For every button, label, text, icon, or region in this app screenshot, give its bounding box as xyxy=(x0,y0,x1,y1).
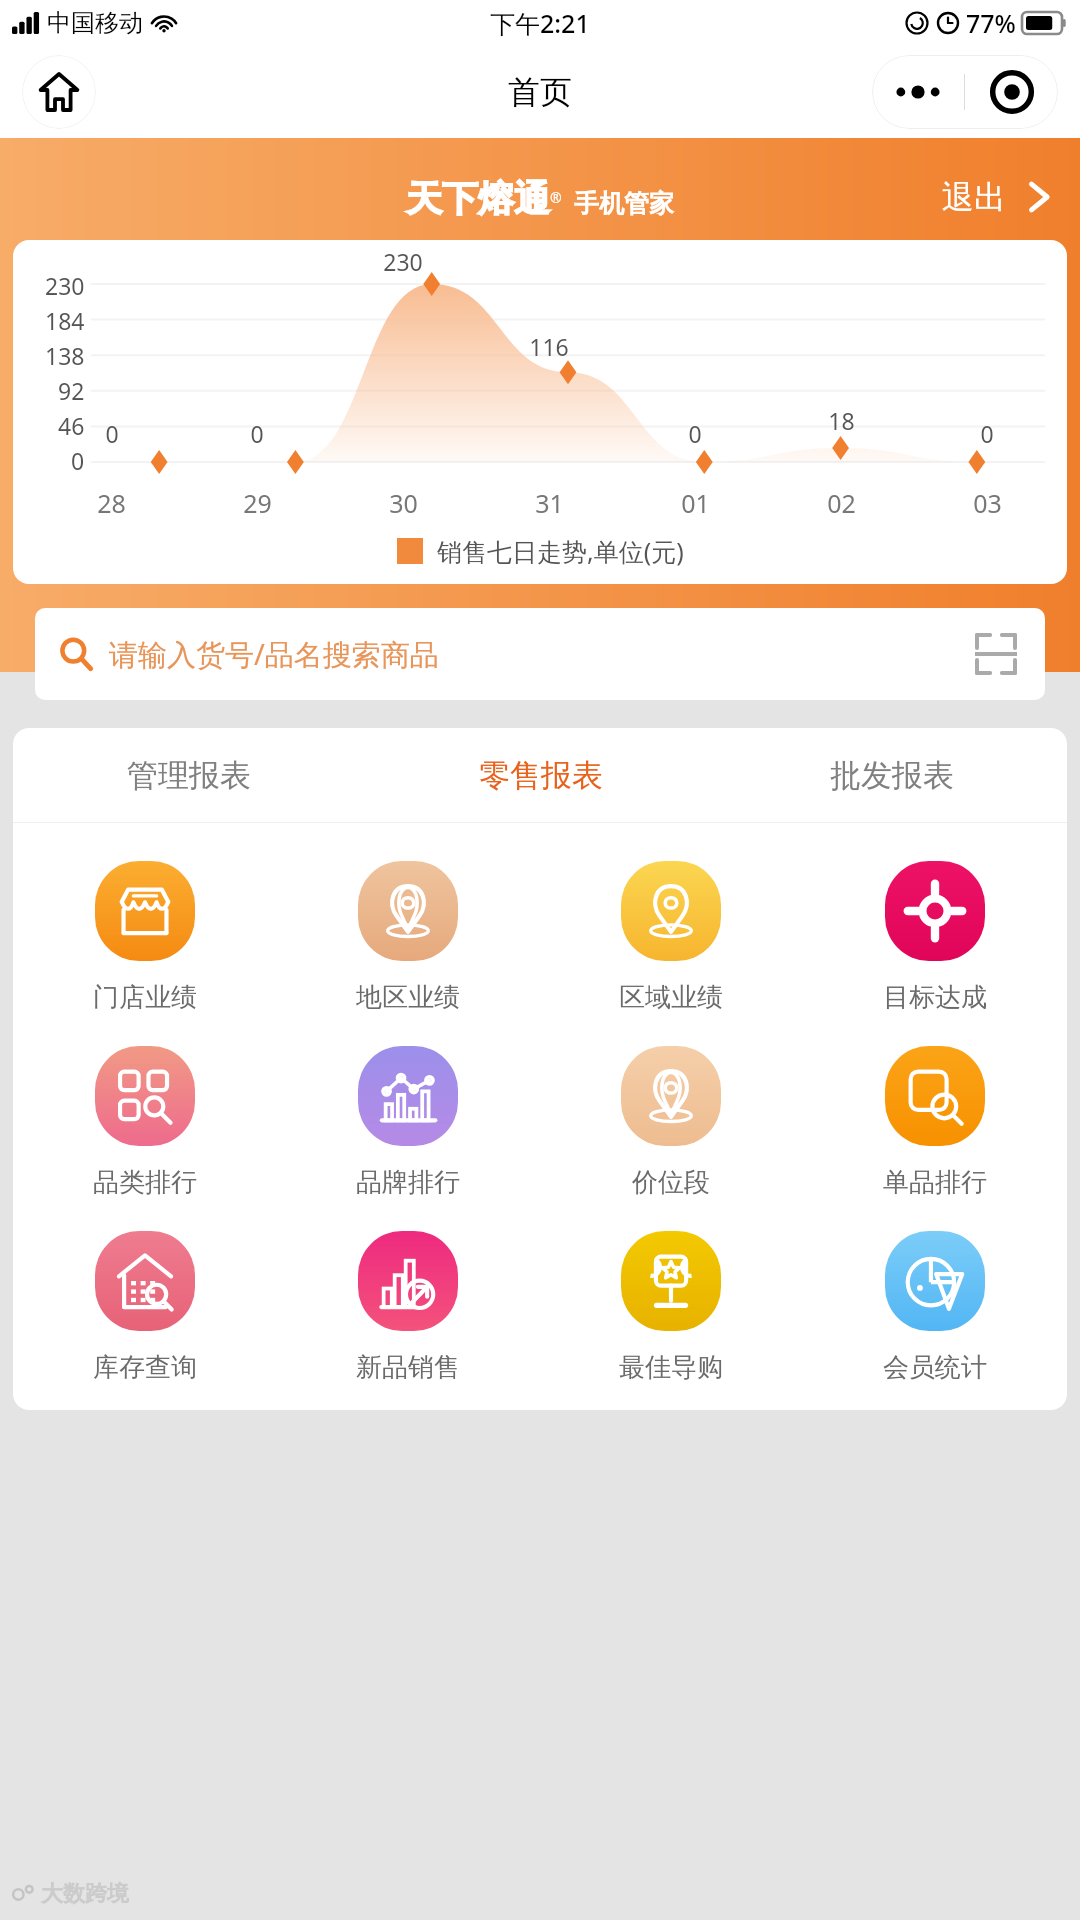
button[interactable]: 门店业绩 xyxy=(13,845,276,1030)
button[interactable]: 品牌排行 xyxy=(276,1030,539,1215)
button[interactable]: 地区业绩 xyxy=(276,845,539,1030)
button[interactable]: 区域业绩 xyxy=(539,845,803,1030)
staticText: 门店业绩 xyxy=(93,981,197,1014)
staticText: 首页 xyxy=(508,72,572,112)
button[interactable]: More options xyxy=(872,55,964,129)
button[interactable]: 管理报表 xyxy=(13,728,365,822)
staticText: 地区业绩 xyxy=(356,981,460,1014)
staticText: 0 xyxy=(71,445,85,476)
staticText: 最佳导购 xyxy=(619,1351,723,1384)
staticText: 下午2:21 xyxy=(490,6,590,40)
staticText: 库存查询 xyxy=(93,1351,197,1384)
staticText: 大数跨境 xyxy=(41,1880,129,1908)
staticText: 目标达成 xyxy=(883,981,987,1014)
staticText: 138 xyxy=(45,340,85,371)
staticText: 0 xyxy=(105,418,119,449)
staticText: ® xyxy=(550,188,562,207)
button[interactable]: 请输入货号/品名搜索商品 xyxy=(35,608,1045,700)
button[interactable]: Scan xyxy=(965,55,1058,129)
staticText: 中国移动 xyxy=(47,8,143,38)
staticText: 28 xyxy=(97,486,126,520)
staticText: 请输入货号/品名搜索商品 xyxy=(109,634,975,674)
staticText: 02 xyxy=(827,486,856,520)
staticText: 管理报表 xyxy=(127,756,251,795)
button[interactable]: Home xyxy=(22,55,96,129)
staticText: 零售报表 xyxy=(479,756,603,795)
staticText: 03 xyxy=(973,486,1002,520)
button[interactable]: 价位段 xyxy=(539,1030,803,1215)
button[interactable]: 零售报表 xyxy=(365,728,716,822)
button[interactable]: 单品排行 xyxy=(803,1030,1067,1215)
staticText: 30 xyxy=(389,486,418,520)
staticText: 0 xyxy=(250,418,264,449)
button[interactable]: 最佳导购 xyxy=(539,1215,803,1400)
staticText: 品牌排行 xyxy=(356,1166,460,1199)
staticText: 0 xyxy=(980,418,994,449)
button[interactable]: 会员统计 xyxy=(803,1215,1067,1400)
button[interactable]: 退出 xyxy=(942,177,1056,217)
staticText: 230 xyxy=(45,270,85,301)
staticText: 18 xyxy=(828,405,855,436)
staticText: 184 xyxy=(45,305,85,336)
staticText: 116 xyxy=(529,331,569,362)
button[interactable]: Scan barcode xyxy=(975,633,1017,675)
button[interactable]: 新品销售 xyxy=(276,1215,539,1400)
staticText: 品类排行 xyxy=(93,1166,197,1199)
staticText: 批发报表 xyxy=(830,756,954,795)
staticText: 77% xyxy=(966,6,1016,40)
button[interactable]: 目标达成 xyxy=(803,845,1067,1030)
staticText: 230 xyxy=(383,246,423,277)
staticText: 92 xyxy=(58,375,85,406)
staticText: 天下熔通 xyxy=(406,176,550,221)
staticText: 新品销售 xyxy=(356,1351,460,1384)
staticText: 价位段 xyxy=(632,1166,710,1199)
staticText: 手机管家 xyxy=(574,188,674,219)
button[interactable]: 批发报表 xyxy=(716,728,1067,822)
staticText: 区域业绩 xyxy=(619,981,723,1014)
staticText: 46 xyxy=(58,410,85,441)
staticText: 退出 xyxy=(942,177,1006,217)
staticText: 0 xyxy=(688,418,702,449)
staticText: 单品排行 xyxy=(883,1166,987,1199)
staticText: 销售七日走势,单位(元) xyxy=(437,534,684,568)
staticText: 01 xyxy=(681,486,710,520)
button[interactable]: 品类排行 xyxy=(13,1030,276,1215)
staticText: 29 xyxy=(243,486,272,520)
staticText: 31 xyxy=(535,486,564,520)
button[interactable]: 库存查询 xyxy=(13,1215,276,1400)
staticText: 会员统计 xyxy=(883,1351,987,1384)
